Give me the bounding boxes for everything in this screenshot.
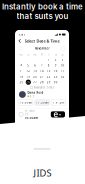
staticText: November [34, 47, 49, 50]
button[interactable]: 15 [45, 68, 52, 74]
staticText: 15 [47, 69, 51, 73]
button[interactable]: Next month [61, 47, 65, 50]
button[interactable]: 10 [59, 63, 66, 68]
button[interactable]: 11:30am [35, 100, 49, 105]
button[interactable]: 11 [18, 68, 25, 74]
button[interactable]: Back [17, 38, 23, 44]
button[interactable]: 14 [39, 68, 45, 74]
button[interactable]: 2 [52, 57, 59, 63]
staticText: 3 [62, 58, 64, 61]
button[interactable]: 7 [39, 63, 45, 68]
button[interactable]: 16 [52, 68, 59, 74]
button[interactable]: 30 [52, 79, 59, 85]
staticText: that suits you [16, 11, 68, 21]
staticText: We [33, 53, 37, 56]
staticText: 22 [47, 75, 51, 78]
staticText: 25 [19, 80, 23, 84]
staticText: Sa [55, 53, 57, 56]
staticText: 11:30am [36, 101, 48, 104]
button[interactable]: 27 [32, 79, 39, 85]
button[interactable]: 26 [25, 79, 32, 85]
button[interactable]: 19 [25, 74, 32, 79]
button[interactable]: 1 [45, 57, 52, 63]
staticText: 6 [34, 64, 36, 67]
staticText: 23 [54, 75, 58, 78]
button[interactable]: 3 [59, 57, 66, 63]
staticText: 7 [41, 64, 43, 67]
staticText: Mo [19, 53, 23, 56]
button[interactable]: 9 [52, 63, 59, 68]
button[interactable]: 23 [52, 74, 59, 79]
staticText: 29 [47, 80, 51, 84]
staticText: Tu [27, 53, 30, 56]
button[interactable]: 10:00am [18, 100, 33, 105]
staticText: 4.9 [30, 95, 35, 98]
staticText: Su [61, 53, 64, 56]
staticText: 21 [40, 75, 44, 78]
staticText: 4 [20, 64, 22, 67]
button[interactable]: 13 [32, 68, 39, 74]
button[interactable]: 28 [39, 79, 45, 85]
button[interactable]: 24 [59, 74, 66, 79]
staticText: 27 [33, 80, 37, 84]
staticText: Next [53, 100, 62, 129]
staticText: 5 [27, 64, 29, 67]
staticText: 18 [19, 75, 23, 78]
button[interactable]: 20 [32, 74, 39, 79]
button[interactable]: 21 [39, 74, 45, 79]
button[interactable]: 4 [18, 63, 25, 68]
button[interactable]: 12 [25, 68, 32, 74]
staticText: Dana Reid [27, 91, 43, 94]
staticText: 16 [54, 69, 58, 73]
staticText: 30 [54, 80, 58, 84]
staticText: 28 [40, 80, 44, 84]
button[interactable]: 18 [18, 74, 25, 79]
button[interactable]: 25 [18, 79, 25, 85]
staticText: 9:41 [18, 33, 25, 36]
staticText: 10:30am [25, 116, 39, 120]
button[interactable]: 17 [59, 68, 66, 74]
staticText: 17 [61, 69, 65, 73]
staticText: 11 [19, 69, 23, 73]
staticText: 20 [33, 75, 37, 78]
button[interactable]: Next [51, 111, 65, 117]
button[interactable]: Previous month [19, 47, 23, 50]
staticText: Available times [34, 86, 54, 89]
staticText: JIDS [33, 167, 51, 179]
staticText: Fr [48, 53, 50, 56]
button[interactable]: 1:45pm [51, 100, 65, 105]
staticText: 26 [26, 80, 30, 84]
staticText: Th [40, 53, 43, 56]
staticText: Fri, Nov 29 [25, 109, 35, 116]
button[interactable]: 29 [45, 79, 52, 85]
staticText: 1:45pm [53, 101, 64, 104]
staticText: 13 [33, 69, 37, 73]
staticText: 14 [40, 69, 44, 73]
button[interactable]: 5 [25, 63, 32, 68]
button[interactable]: 22 [45, 74, 52, 79]
staticText: 1 [48, 58, 50, 61]
staticText: 2 [55, 58, 57, 61]
button[interactable]: 8 [45, 63, 52, 68]
staticText: 19 [26, 75, 30, 78]
staticText: 24 [61, 75, 65, 78]
staticText: Select Date & Time [24, 38, 59, 44]
staticText: 8 [48, 64, 50, 67]
staticText: 12 [26, 69, 30, 73]
staticText: 10 [61, 64, 65, 67]
staticText: Instantly book a time [2, 2, 83, 11]
button[interactable]: 6 [32, 63, 39, 68]
staticText: 9 [55, 64, 57, 67]
staticText: 10:00am [20, 101, 32, 104]
